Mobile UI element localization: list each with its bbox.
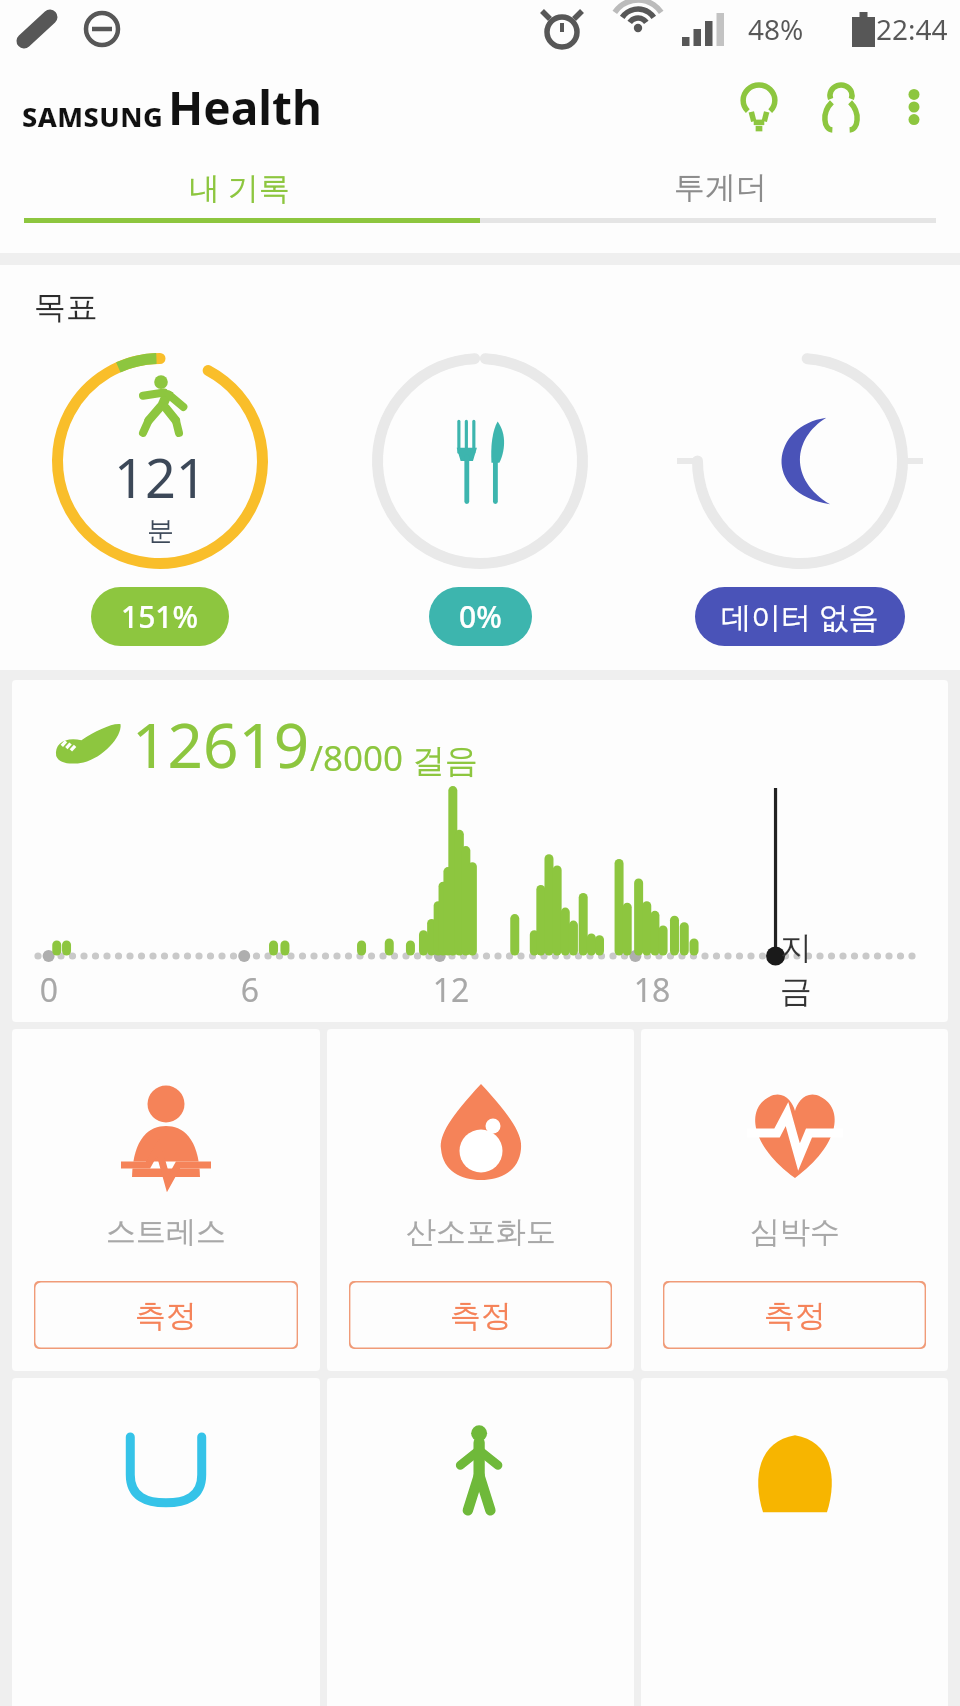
button[interactable]: 0% [320,349,640,646]
staticText: 0 [19,968,79,1012]
button[interactable]: 측정 [34,1281,298,1349]
staticText: 데이터 없음 [721,596,879,637]
button[interactable]: 데이터 없음 [640,349,960,646]
staticText: 0% [459,596,502,637]
staticText: Health [168,76,322,139]
staticText: 12619 [132,702,310,786]
staticText: 분 [147,514,174,548]
staticText: 걸음 [412,740,478,782]
button[interactable] [641,1378,948,1706]
staticText: 측정 [135,1296,197,1335]
staticText: SAMSUNG [22,98,164,135]
staticText: 121 [114,440,207,514]
button[interactable]: Tips [722,70,796,144]
staticText: 목표 [34,287,98,327]
staticText: 18 [622,968,682,1012]
staticText: 151% [121,596,199,637]
staticText: 산소포화도 [406,1213,556,1251]
staticText: 지금 [766,928,826,1012]
button[interactable]: Profile [804,70,878,144]
button[interactable]: 투게더 [480,156,960,218]
staticText: 48% [748,10,804,48]
button[interactable] [327,1378,634,1706]
staticText: /8000 [310,734,404,782]
staticText: 측정 [450,1296,512,1335]
staticText: 측정 [764,1296,826,1335]
button[interactable]: 심박수 [641,1029,948,1371]
staticText: 22:44 [876,10,948,48]
button[interactable]: 측정 [349,1281,612,1349]
button[interactable]: 12619 [12,680,948,1022]
staticText: 내 기록 [189,166,291,208]
button[interactable]: 내 기록 [0,156,480,218]
button[interactable]: 121 [0,349,320,646]
staticText: 6 [220,968,280,1012]
button[interactable]: 0% [429,587,532,646]
button[interactable]: 산소포화도 [327,1029,634,1371]
button[interactable]: 데이터 없음 [695,587,905,646]
button[interactable]: 스트레스 [12,1029,320,1371]
button[interactable] [12,1378,320,1706]
button[interactable]: More options [882,75,946,139]
staticText: 12 [421,968,481,1012]
staticText: 심박수 [750,1213,840,1251]
staticText: 스트레스 [106,1213,226,1251]
staticText: 투게더 [674,168,767,207]
button[interactable]: 151% [91,587,229,646]
button[interactable]: 측정 [663,1281,926,1349]
